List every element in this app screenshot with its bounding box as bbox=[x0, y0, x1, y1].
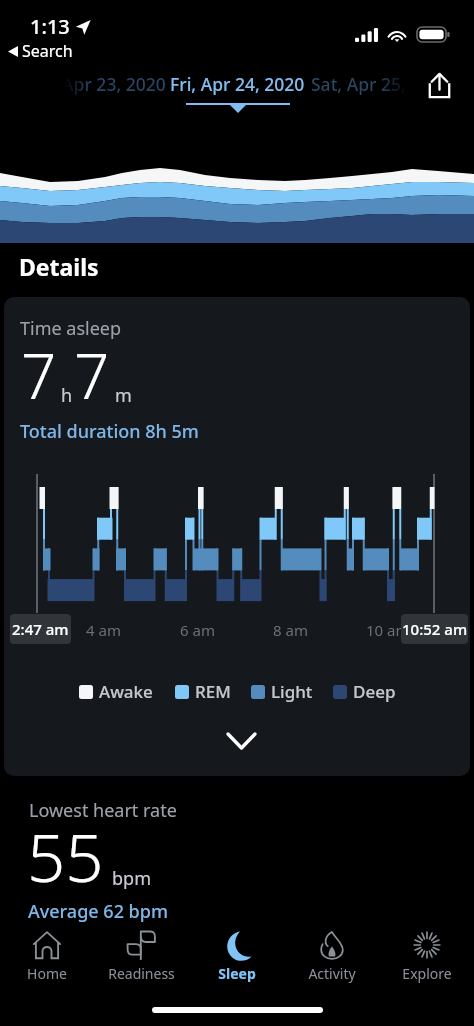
staticText: Search bbox=[22, 40, 73, 62]
staticText: 4 am bbox=[86, 620, 121, 640]
staticText: Average 62 bpm bbox=[28, 899, 168, 924]
staticText: 55 bbox=[27, 810, 104, 901]
staticText: 8 am bbox=[273, 620, 308, 640]
staticText: 2:47 am bbox=[12, 619, 69, 639]
staticText: Readiness bbox=[108, 964, 175, 983]
staticText: 10 am bbox=[366, 620, 410, 640]
button[interactable]: Thu, Apr 23, 2020 bbox=[21, 72, 166, 96]
button[interactable]: Show more bbox=[212, 721, 270, 761]
staticText: bpm bbox=[112, 866, 151, 891]
staticText: Fri, Apr 24, 2020 bbox=[170, 72, 305, 96]
button[interactable]: REM bbox=[175, 680, 231, 703]
staticText: Activity bbox=[308, 964, 356, 983]
staticText: Deep bbox=[353, 680, 396, 703]
staticText: 7 bbox=[21, 333, 57, 417]
staticText: REM bbox=[195, 680, 231, 703]
staticText: 6 am bbox=[180, 620, 215, 640]
staticText: Explore bbox=[402, 964, 452, 983]
button[interactable]: Share bbox=[421, 67, 457, 103]
button[interactable]: Readiness bbox=[94, 925, 189, 983]
button[interactable]: Light bbox=[251, 680, 313, 703]
button[interactable]: Sleep bbox=[189, 925, 284, 983]
button[interactable]: Activity bbox=[284, 925, 379, 983]
staticText: Total duration 8h 5m bbox=[20, 419, 199, 444]
button[interactable]: Explore bbox=[379, 925, 474, 983]
staticText: Time asleep bbox=[20, 316, 122, 341]
button[interactable]: Awake bbox=[79, 680, 153, 703]
button[interactable]: Deep bbox=[333, 680, 396, 703]
staticText: Light bbox=[271, 680, 313, 703]
staticText: Sleep bbox=[218, 964, 256, 983]
button[interactable]: Home bbox=[0, 925, 94, 983]
staticText: Lowest heart rate bbox=[29, 798, 177, 823]
staticText: Details bbox=[19, 251, 99, 282]
staticText: Home bbox=[27, 964, 67, 983]
staticText: m bbox=[115, 383, 132, 408]
staticText: Awake bbox=[99, 680, 153, 703]
button[interactable]: Fri, Apr 24, 2020 bbox=[170, 72, 305, 113]
staticText: h bbox=[61, 383, 73, 408]
staticText: 7 bbox=[74, 333, 110, 417]
staticText: 1:13 bbox=[30, 13, 70, 40]
button[interactable]: Sat, Apr 25, 2020 bbox=[311, 72, 451, 96]
staticText: 10:52 am bbox=[402, 619, 468, 639]
